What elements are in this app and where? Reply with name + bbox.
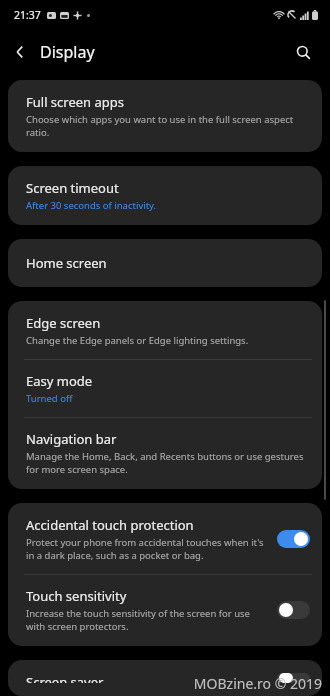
button[interactable]: Toggle off — [277, 673, 310, 683]
button[interactable]: Touch sensitivity — [8, 575, 322, 646]
button[interactable]: Edge screen — [8, 301, 322, 359]
button[interactable]: Home screen — [8, 239, 322, 287]
button[interactable]: Screen timeout — [8, 166, 322, 225]
staticText: Navigation bar — [26, 430, 117, 448]
staticText: Choose which apps you want to use in the… — [26, 113, 310, 139]
staticText: Protect your phone from accidental touch… — [26, 536, 269, 562]
staticText: Change the Edge panels or Edge lighting … — [26, 334, 249, 347]
staticText: Accidental touch protection — [26, 516, 194, 534]
staticText: Full screen apps — [26, 93, 125, 111]
staticText: 21:37 — [14, 8, 41, 22]
button[interactable]: Easy mode — [8, 360, 322, 417]
staticText: Turned off — [26, 392, 73, 405]
staticText: Home screen — [26, 254, 107, 272]
button[interactable]: Toggle on — [277, 530, 310, 548]
button[interactable]: Search — [284, 33, 322, 71]
button[interactable]: Accidental touch protection — [8, 503, 322, 574]
staticText: Edge screen — [26, 314, 101, 332]
button[interactable]: Navigation bar — [8, 418, 322, 489]
staticText: Screen timeout — [26, 179, 119, 197]
button[interactable]: Screen saver — [8, 660, 322, 696]
staticText: Increase the touch sensitivity of the sc… — [26, 607, 269, 633]
button[interactable]: Toggle off — [277, 601, 310, 619]
staticText: Screen saver — [26, 673, 104, 683]
button[interactable]: Full screen apps — [8, 80, 322, 152]
staticText: MOBzine.ro © 2019 — [193, 674, 322, 693]
staticText: Easy mode — [26, 372, 93, 390]
staticText: Manage the Home, Back, and Recents butto… — [26, 450, 310, 476]
staticText: Touch sensitivity — [26, 587, 127, 605]
staticText: Display — [40, 41, 95, 63]
button[interactable]: Back — [0, 32, 40, 72]
staticText: After 30 seconds of inactivity. — [26, 199, 157, 212]
